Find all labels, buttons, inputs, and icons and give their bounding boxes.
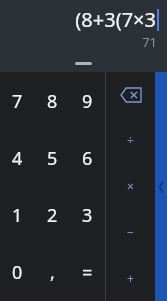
button[interactable]: 2	[35, 187, 70, 244]
staticText: 8	[47, 89, 58, 114]
staticText: 9	[82, 89, 93, 114]
staticText: +	[127, 270, 134, 286]
button[interactable]: ,	[35, 244, 70, 301]
staticText: ×	[127, 178, 134, 194]
staticText: −	[127, 224, 134, 240]
button[interactable]: 5	[35, 130, 70, 187]
staticText: (8+3(7×3	[75, 6, 156, 33]
button[interactable]: 3	[70, 187, 105, 244]
button[interactable]: +	[106, 255, 155, 301]
staticText: 1	[12, 203, 23, 228]
staticText: 2	[47, 203, 58, 228]
button[interactable]: ×	[106, 163, 155, 209]
other: Backspace	[121, 88, 141, 102]
button[interactable]: 6	[70, 130, 105, 187]
button[interactable]: 8	[35, 72, 70, 130]
button[interactable]: 7	[0, 72, 35, 130]
button[interactable]	[75, 62, 92, 65]
staticText: 4	[12, 146, 23, 171]
staticText: =	[82, 260, 93, 285]
button[interactable]: 1	[0, 187, 35, 244]
button[interactable]: =	[70, 244, 105, 301]
staticText: 71	[142, 33, 157, 51]
button[interactable]: ÷	[106, 117, 155, 163]
button[interactable]: 9	[70, 72, 105, 130]
staticText: 0	[12, 260, 23, 285]
button[interactable]: Backspace	[106, 72, 155, 117]
staticText: ÷	[127, 132, 134, 148]
staticText: 7	[12, 89, 23, 114]
button[interactable]: Expand panel	[155, 72, 167, 301]
staticText: ,	[50, 260, 55, 285]
button[interactable]: −	[106, 209, 155, 255]
staticText: 5	[47, 146, 58, 171]
staticText: 6	[82, 146, 93, 171]
button[interactable]: 0	[0, 244, 35, 301]
staticText: 3	[82, 203, 93, 228]
button[interactable]: 4	[0, 130, 35, 187]
